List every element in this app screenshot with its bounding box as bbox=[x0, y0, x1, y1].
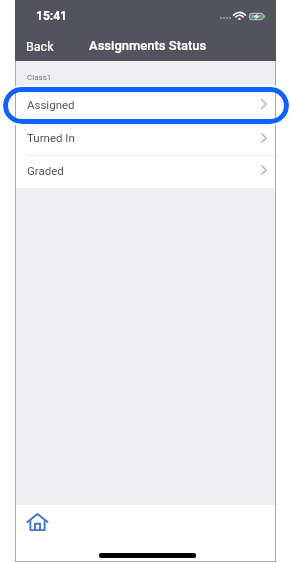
button[interactable]: Home bbox=[22, 507, 52, 537]
staticText: Graded bbox=[27, 164, 64, 177]
staticText: 15:41 bbox=[36, 9, 67, 23]
staticText: Class1 bbox=[27, 73, 52, 82]
button[interactable]: Back bbox=[15, 34, 64, 58]
staticText: Assigned bbox=[27, 98, 75, 111]
button[interactable]: Assigned bbox=[15, 85, 276, 121]
button[interactable]: Turned In bbox=[15, 122, 276, 155]
staticText: Back bbox=[26, 39, 54, 54]
staticText: Assignments Status bbox=[89, 38, 207, 53]
staticText: Turned In bbox=[27, 131, 75, 144]
button[interactable]: Graded bbox=[15, 156, 276, 188]
